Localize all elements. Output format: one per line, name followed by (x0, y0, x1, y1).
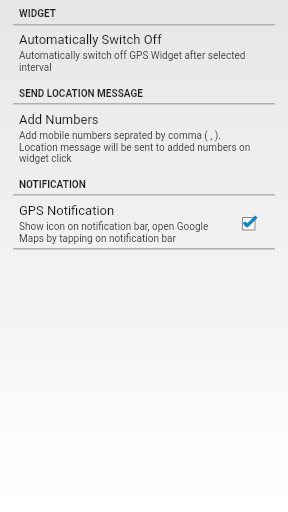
staticText: GPS Notification (19, 203, 115, 218)
staticText: Automatically switch off GPS Widget afte… (19, 50, 252, 73)
staticText: Add Numbers (19, 112, 99, 127)
staticText: Show icon on notification bar, open Goog… (19, 221, 235, 244)
staticText: SEND LOCATION MESSAGE (19, 88, 143, 100)
button[interactable]: Automatically Switch Off (0, 26, 288, 78)
staticText: Add mobile numbers seprated by comma ( ,… (19, 130, 252, 164)
staticText: NOTIFICATION (19, 179, 86, 191)
button[interactable]: SEND LOCATION MESSAGE (0, 88, 288, 100)
button[interactable]: WIDGET (0, 8, 288, 20)
button[interactable]: GPS Notification (0, 196, 288, 248)
staticText: Automatically Switch Off (19, 32, 162, 47)
staticText: WIDGET (19, 8, 56, 20)
button[interactable]: NOTIFICATION (0, 179, 288, 191)
button[interactable]: Add Numbers (0, 105, 288, 169)
button[interactable]: GPS Notification checkbox (239, 213, 261, 235)
